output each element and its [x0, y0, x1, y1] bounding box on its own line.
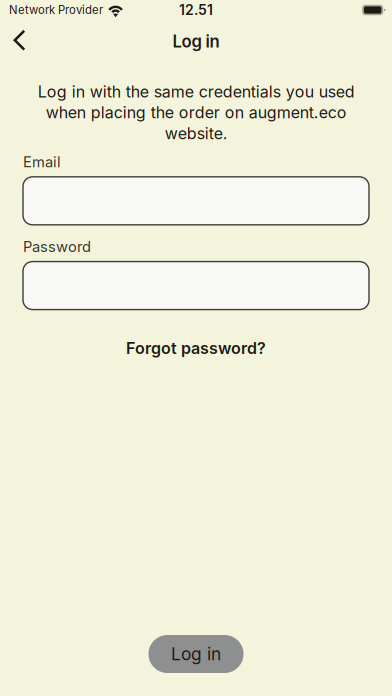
staticText: Network Provider — [9, 3, 103, 17]
button[interactable]: Back — [0, 20, 42, 56]
staticText: Log in with the same credentials you use… — [37, 82, 354, 143]
staticText: Log in — [171, 643, 221, 664]
staticText: Forgot password? — [126, 339, 266, 358]
staticText: 12.51 — [179, 1, 213, 18]
staticText: Log in — [172, 31, 219, 52]
staticText: Password — [23, 238, 91, 255]
staticText: Email — [23, 153, 61, 171]
button[interactable]: Log in — [148, 635, 243, 673]
button[interactable]: Forgot password? — [110, 329, 282, 368]
